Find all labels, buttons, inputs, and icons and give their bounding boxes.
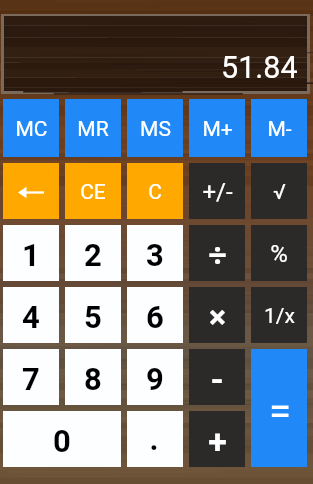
button[interactable]: MR (65, 99, 121, 157)
staticText: % (270, 240, 288, 268)
button[interactable]: 1/x (251, 287, 307, 343)
staticText: M- (267, 117, 292, 142)
staticText: +/- (202, 178, 233, 206)
staticText: . (149, 421, 159, 457)
button[interactable]: ÷ (189, 225, 245, 281)
staticText: MR (77, 117, 109, 142)
button[interactable]: + (189, 411, 245, 467)
staticText: + (208, 421, 227, 461)
staticText: MC (15, 117, 48, 142)
button[interactable]: 5 (65, 287, 121, 343)
button[interactable]: CE (65, 163, 121, 219)
button[interactable]: M+ (189, 99, 245, 157)
staticText: 4 (22, 299, 40, 335)
staticText: × (209, 298, 226, 336)
staticText: 7 (22, 361, 40, 397)
button[interactable]: Backspace (3, 163, 59, 219)
button[interactable]: MC (3, 99, 59, 157)
button[interactable]: . (127, 411, 183, 467)
button[interactable]: 0 (3, 411, 121, 467)
staticText: 51.84 (221, 50, 298, 86)
staticText: √ (273, 180, 286, 205)
staticText: 9 (146, 361, 164, 397)
button[interactable]: 2 (65, 225, 121, 281)
button[interactable]: × (189, 287, 245, 343)
button[interactable]: 8 (65, 349, 121, 405)
button[interactable]: - (189, 349, 245, 405)
staticText: - (210, 359, 224, 399)
staticText: 6 (146, 299, 164, 335)
button[interactable]: M- (251, 99, 307, 157)
button[interactable]: 1 (3, 225, 59, 281)
staticText: 5 (84, 299, 102, 335)
staticText: 0 (53, 423, 71, 459)
button[interactable]: 4 (3, 287, 59, 343)
button[interactable]: = (251, 349, 307, 467)
staticText: 2 (84, 237, 102, 273)
button[interactable]: √ (251, 163, 307, 219)
staticText: 3 (146, 237, 164, 273)
staticText: = (269, 388, 291, 435)
staticText: MS (140, 117, 171, 142)
button[interactable]: C (127, 163, 183, 219)
button[interactable]: 6 (127, 287, 183, 343)
staticText: ÷ (208, 236, 227, 274)
staticText: 1/x (264, 304, 295, 329)
staticText: C (148, 180, 162, 205)
staticText: 8 (84, 361, 102, 397)
staticText: CE (80, 180, 106, 205)
button[interactable]: MS (127, 99, 183, 157)
staticText: 1 (22, 237, 40, 273)
staticText: M+ (202, 117, 233, 142)
button[interactable]: 3 (127, 225, 183, 281)
button[interactable]: 7 (3, 349, 59, 405)
button[interactable]: % (251, 225, 307, 281)
button[interactable]: +/- (189, 163, 245, 219)
button[interactable]: 9 (127, 349, 183, 405)
